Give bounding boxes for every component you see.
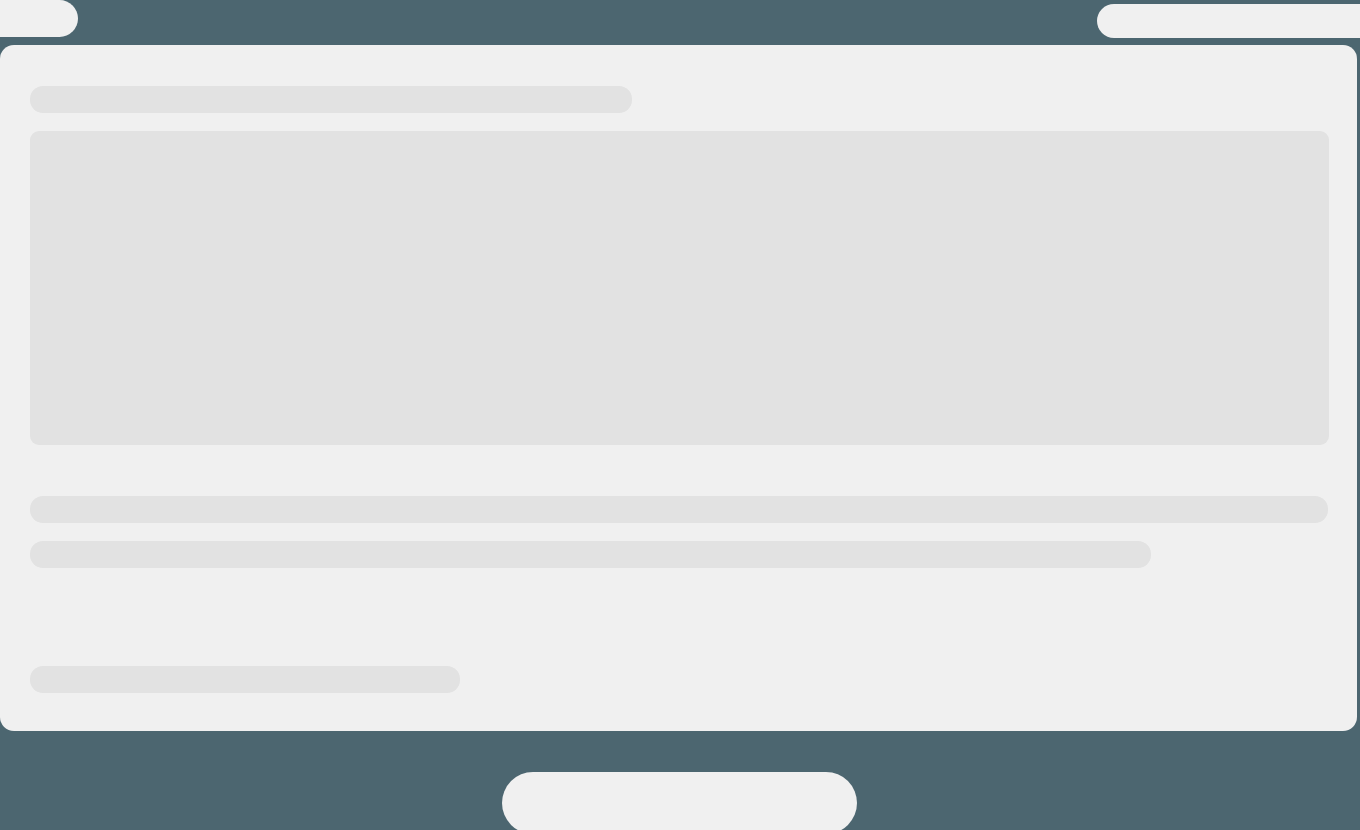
button[interactable]: Image xyxy=(0,45,1357,731)
button[interactable]: Actions xyxy=(1097,4,1360,38)
button[interactable]: Primary action xyxy=(502,772,857,830)
button[interactable]: Navigate up xyxy=(0,0,78,37)
